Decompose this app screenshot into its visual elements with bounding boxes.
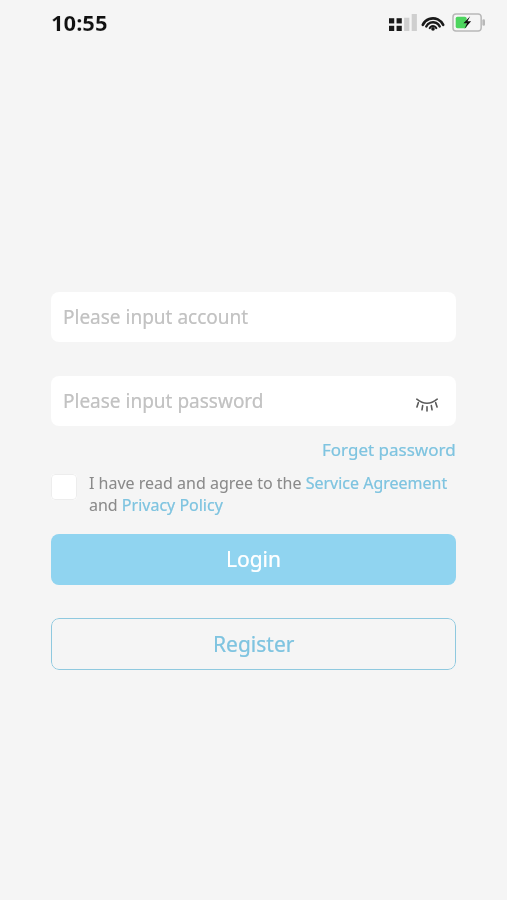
button[interactable]: Please input account [51,292,456,342]
button[interactable]: Login [51,534,456,585]
staticText: 10:55 [51,7,108,37]
other: Agree to terms [51,474,77,500]
staticText: Please input account [63,304,249,330]
button[interactable]: Forget password [322,438,456,461]
button[interactable]: Register [51,618,456,670]
staticText: Please input password [63,388,264,414]
button[interactable]: Show password [410,384,444,418]
staticText: Register [213,630,295,659]
staticText: I have read and agree to the Service Agr… [89,472,467,516]
button[interactable]: Agree to terms [51,472,467,516]
button[interactable]: Please input password [51,376,456,426]
staticText: Forget password [322,438,456,461]
staticText: Login [226,545,282,574]
